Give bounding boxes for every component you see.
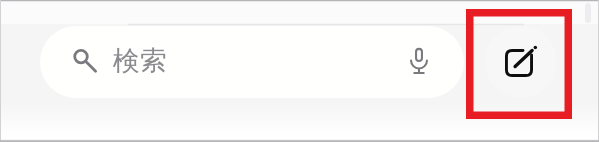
button[interactable]: 検索: [40, 26, 464, 98]
button[interactable]: Voice search: [399, 42, 439, 82]
button[interactable]: Compose: [485, 26, 557, 98]
staticText: 検索: [113, 44, 167, 78]
